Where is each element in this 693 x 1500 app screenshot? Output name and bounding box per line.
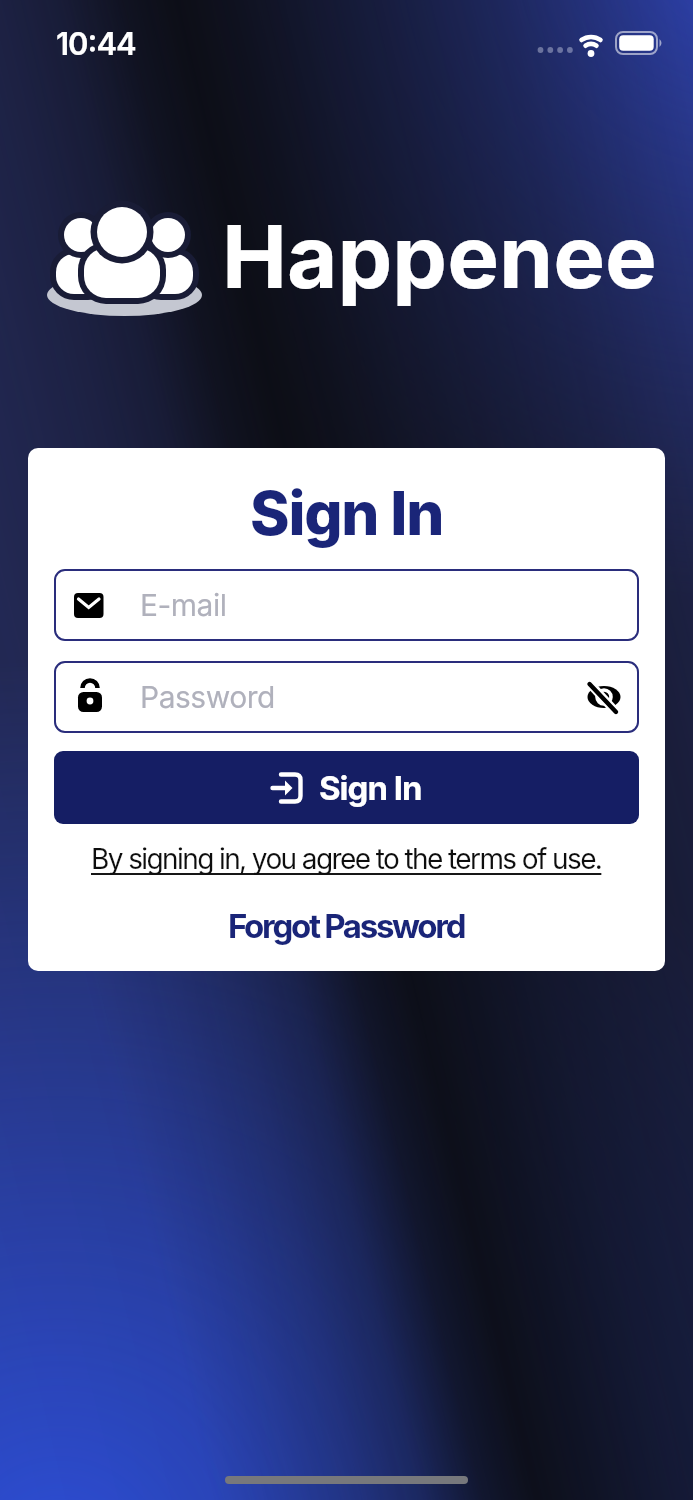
staticText: Sign In <box>250 477 444 549</box>
button[interactable]: Password <box>54 661 639 733</box>
button[interactable]: By signing in, you agree to the terms of… <box>28 841 665 877</box>
staticText: By signing in, you agree to the terms of… <box>91 842 602 876</box>
staticText: Happenee <box>222 204 657 309</box>
staticText: 10:44 <box>56 25 136 61</box>
staticText: Forgot Password <box>228 906 465 946</box>
button[interactable]: Sign In <box>54 751 639 824</box>
button[interactable]: E-mail <box>54 569 639 641</box>
staticText: Password <box>140 679 275 715</box>
staticText: E-mail <box>140 587 227 623</box>
button[interactable]: Forgot Password <box>28 906 665 946</box>
staticText: Sign In <box>319 768 422 808</box>
